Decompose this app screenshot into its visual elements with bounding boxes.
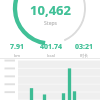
staticText: 401.74 [40, 42, 62, 52]
staticText: km [14, 53, 20, 58]
button[interactable]: 7.91 [0, 42, 34, 58]
staticText: Steps [44, 20, 57, 27]
staticText: 时长 [80, 53, 88, 58]
button[interactable]: Step history chart [0, 59, 100, 100]
staticText: 03:21 [75, 42, 93, 52]
button[interactable]: 10,462 [0, 0, 100, 44]
staticText: kcal [47, 53, 55, 58]
button[interactable]: 401.74 [34, 42, 67, 58]
staticText: 10,462 [30, 1, 71, 19]
button[interactable]: 03:21 [67, 42, 100, 58]
staticText: 7.91 [10, 42, 24, 52]
